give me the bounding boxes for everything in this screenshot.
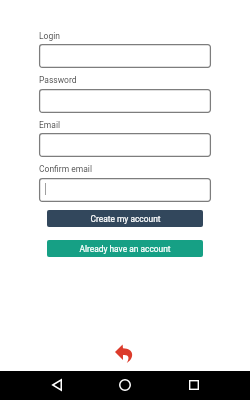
button[interactable]: Create my account	[47, 210, 203, 227]
button[interactable]	[39, 44, 211, 68]
button[interactable]	[39, 89, 211, 113]
button[interactable]: Home	[110, 370, 139, 399]
button[interactable]: Recents	[179, 370, 208, 399]
button[interactable]: Undo	[115, 344, 134, 363]
staticText: Login	[39, 31, 60, 41]
staticText: Create my account	[90, 214, 161, 224]
button[interactable]: Back	[42, 370, 71, 399]
staticText: Password	[39, 75, 77, 85]
button[interactable]	[39, 133, 211, 157]
staticText: Email	[39, 120, 61, 130]
staticText: Confirm email	[39, 164, 92, 174]
button[interactable]: Already have an account	[47, 240, 203, 257]
button[interactable]	[39, 178, 211, 202]
staticText: Already have an account	[79, 244, 171, 254]
